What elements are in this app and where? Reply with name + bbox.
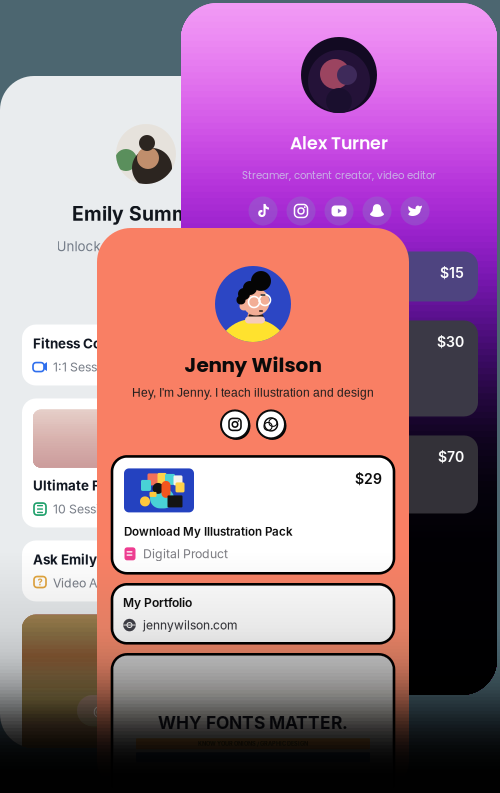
staticText: $70 <box>438 448 464 465</box>
button[interactable]: Instagram <box>221 410 249 438</box>
staticText: Ultimate Fitness <box>33 477 139 494</box>
staticText: Video Answer <box>53 576 132 590</box>
button[interactable]: TikTok <box>248 196 277 225</box>
staticText: Let's talk <box>119 739 173 755</box>
staticText: ? <box>37 576 42 588</box>
button[interactable]: Get in touch <box>22 614 270 793</box>
button[interactable]: Twitter <box>400 196 429 225</box>
staticText: My Portfolio <box>123 595 192 610</box>
staticText: $29 <box>355 470 382 487</box>
button[interactable]: Why Fonts Matter book <box>112 654 394 793</box>
staticText: Digital Product <box>143 546 228 561</box>
staticText: @ personaltrainer <box>93 703 199 718</box>
button[interactable]: Snapchat <box>362 196 391 225</box>
staticText: Download My Illustration Pack <box>124 524 293 538</box>
button[interactable]: Instagram <box>286 196 315 225</box>
button[interactable]: Ask Emily Anything <box>22 540 270 601</box>
button[interactable]: $15 <box>200 251 478 301</box>
staticText: Fitness Coaching <box>33 335 145 352</box>
staticText: Streamer, content creator, video editor <box>242 168 436 182</box>
staticText: Jenny Wilson <box>184 351 321 379</box>
button[interactable]: $29 <box>112 456 394 573</box>
staticText: $30 <box>437 333 464 350</box>
button[interactable]: $30 <box>200 320 478 416</box>
staticText: 1:1 Session <box>53 360 114 374</box>
staticText: Emily Summers <box>72 202 220 225</box>
staticText: Get in touch <box>102 664 189 682</box>
staticText: Alex Turner <box>290 131 388 155</box>
button[interactable]: Dribbble <box>257 410 285 438</box>
button[interactable]: YouTube <box>324 196 353 225</box>
staticText: Hey, I'm Jenny. I teach illustration and… <box>132 386 374 399</box>
staticText: KNOW YOUR ONIONS / GRAPHIC DESIGN <box>198 740 308 747</box>
button[interactable]: Ultimate Fitness <box>22 398 270 527</box>
staticText: Unlock your fitness potential <box>56 238 235 254</box>
staticText: jennywilson.com <box>143 618 238 632</box>
staticText: $15 <box>440 264 464 281</box>
staticText: 10 Sessions <box>53 502 119 516</box>
button[interactable]: $70 <box>200 435 478 513</box>
staticText: Ask Emily Anything <box>33 551 159 568</box>
button[interactable]: Fitness Coaching <box>22 324 270 385</box>
staticText: WHY FONTS MATTER. <box>158 712 348 733</box>
button[interactable]: My Portfolio <box>112 584 394 643</box>
